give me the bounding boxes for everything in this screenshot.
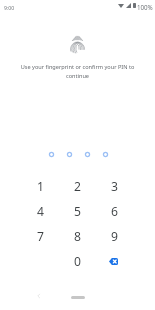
staticText: 0 (74, 253, 81, 270)
staticText: 1 (37, 178, 44, 195)
staticText: 3 (111, 178, 118, 195)
staticText: 8 (74, 228, 81, 245)
button[interactable]: 2 (59, 174, 96, 199)
staticText: 100% (137, 3, 153, 11)
staticText: 7 (37, 228, 44, 245)
button[interactable]: 3 (96, 174, 133, 199)
staticText: 9 (111, 228, 118, 245)
staticText: 4 (37, 203, 44, 220)
button[interactable]: 9 (96, 224, 133, 249)
button[interactable]: Backspace (96, 249, 133, 274)
button[interactable]: 0 (59, 249, 96, 274)
button[interactable]: 5 (59, 199, 96, 224)
button[interactable]: 1 (22, 174, 59, 199)
button[interactable]: 8 (59, 224, 96, 249)
staticText: 2 (74, 178, 81, 195)
staticText: 9:00 (4, 4, 15, 11)
button[interactable]: 6 (96, 199, 133, 224)
staticText: 5 (74, 203, 81, 220)
staticText: 6 (111, 203, 118, 220)
staticText: Use your fingerprint or confirm your PIN… (10, 63, 145, 79)
button[interactable]: 7 (22, 224, 59, 249)
button[interactable]: 4 (22, 199, 59, 224)
